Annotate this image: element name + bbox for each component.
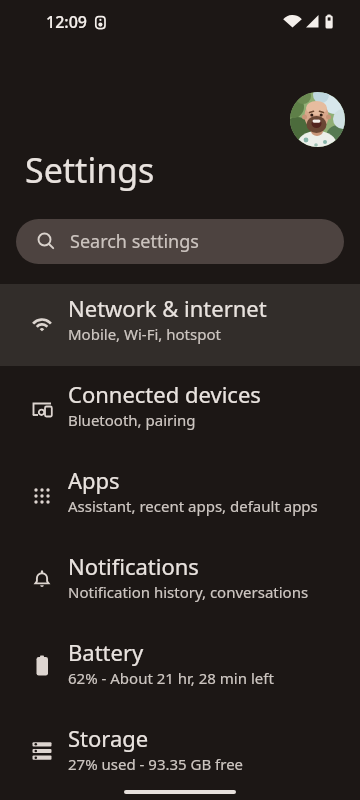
staticText: Connected devices	[68, 379, 261, 409]
staticText: 62% - About 21 hr, 28 min left	[68, 668, 274, 688]
staticText: Settings	[25, 147, 155, 193]
staticText: Network & internet	[68, 293, 267, 323]
button[interactable]	[290, 92, 345, 147]
staticText: Assistant, recent apps, default apps	[68, 496, 318, 516]
staticText: Apps	[68, 465, 120, 495]
staticText: Battery	[68, 637, 144, 667]
button[interactable]: Storage	[0, 714, 360, 800]
staticText: Search settings	[70, 229, 199, 254]
button[interactable]: Network & internet	[0, 284, 360, 370]
button[interactable]: Search settings	[16, 219, 344, 264]
button[interactable]: Connected devices	[0, 370, 360, 456]
staticText: Bluetooth, pairing	[68, 410, 196, 430]
staticText: Mobile, Wi-Fi, hotspot	[68, 324, 221, 344]
staticText: 27% used - 93.35 GB free	[68, 754, 244, 774]
button[interactable]: Notifications	[0, 542, 360, 628]
button[interactable]: Apps	[0, 456, 360, 542]
staticText: Storage	[68, 723, 149, 753]
staticText: Notifications	[68, 551, 199, 581]
button[interactable]: Battery	[0, 628, 360, 714]
staticText: 12:09	[46, 11, 87, 33]
staticText: Notification history, conversations	[68, 582, 309, 602]
